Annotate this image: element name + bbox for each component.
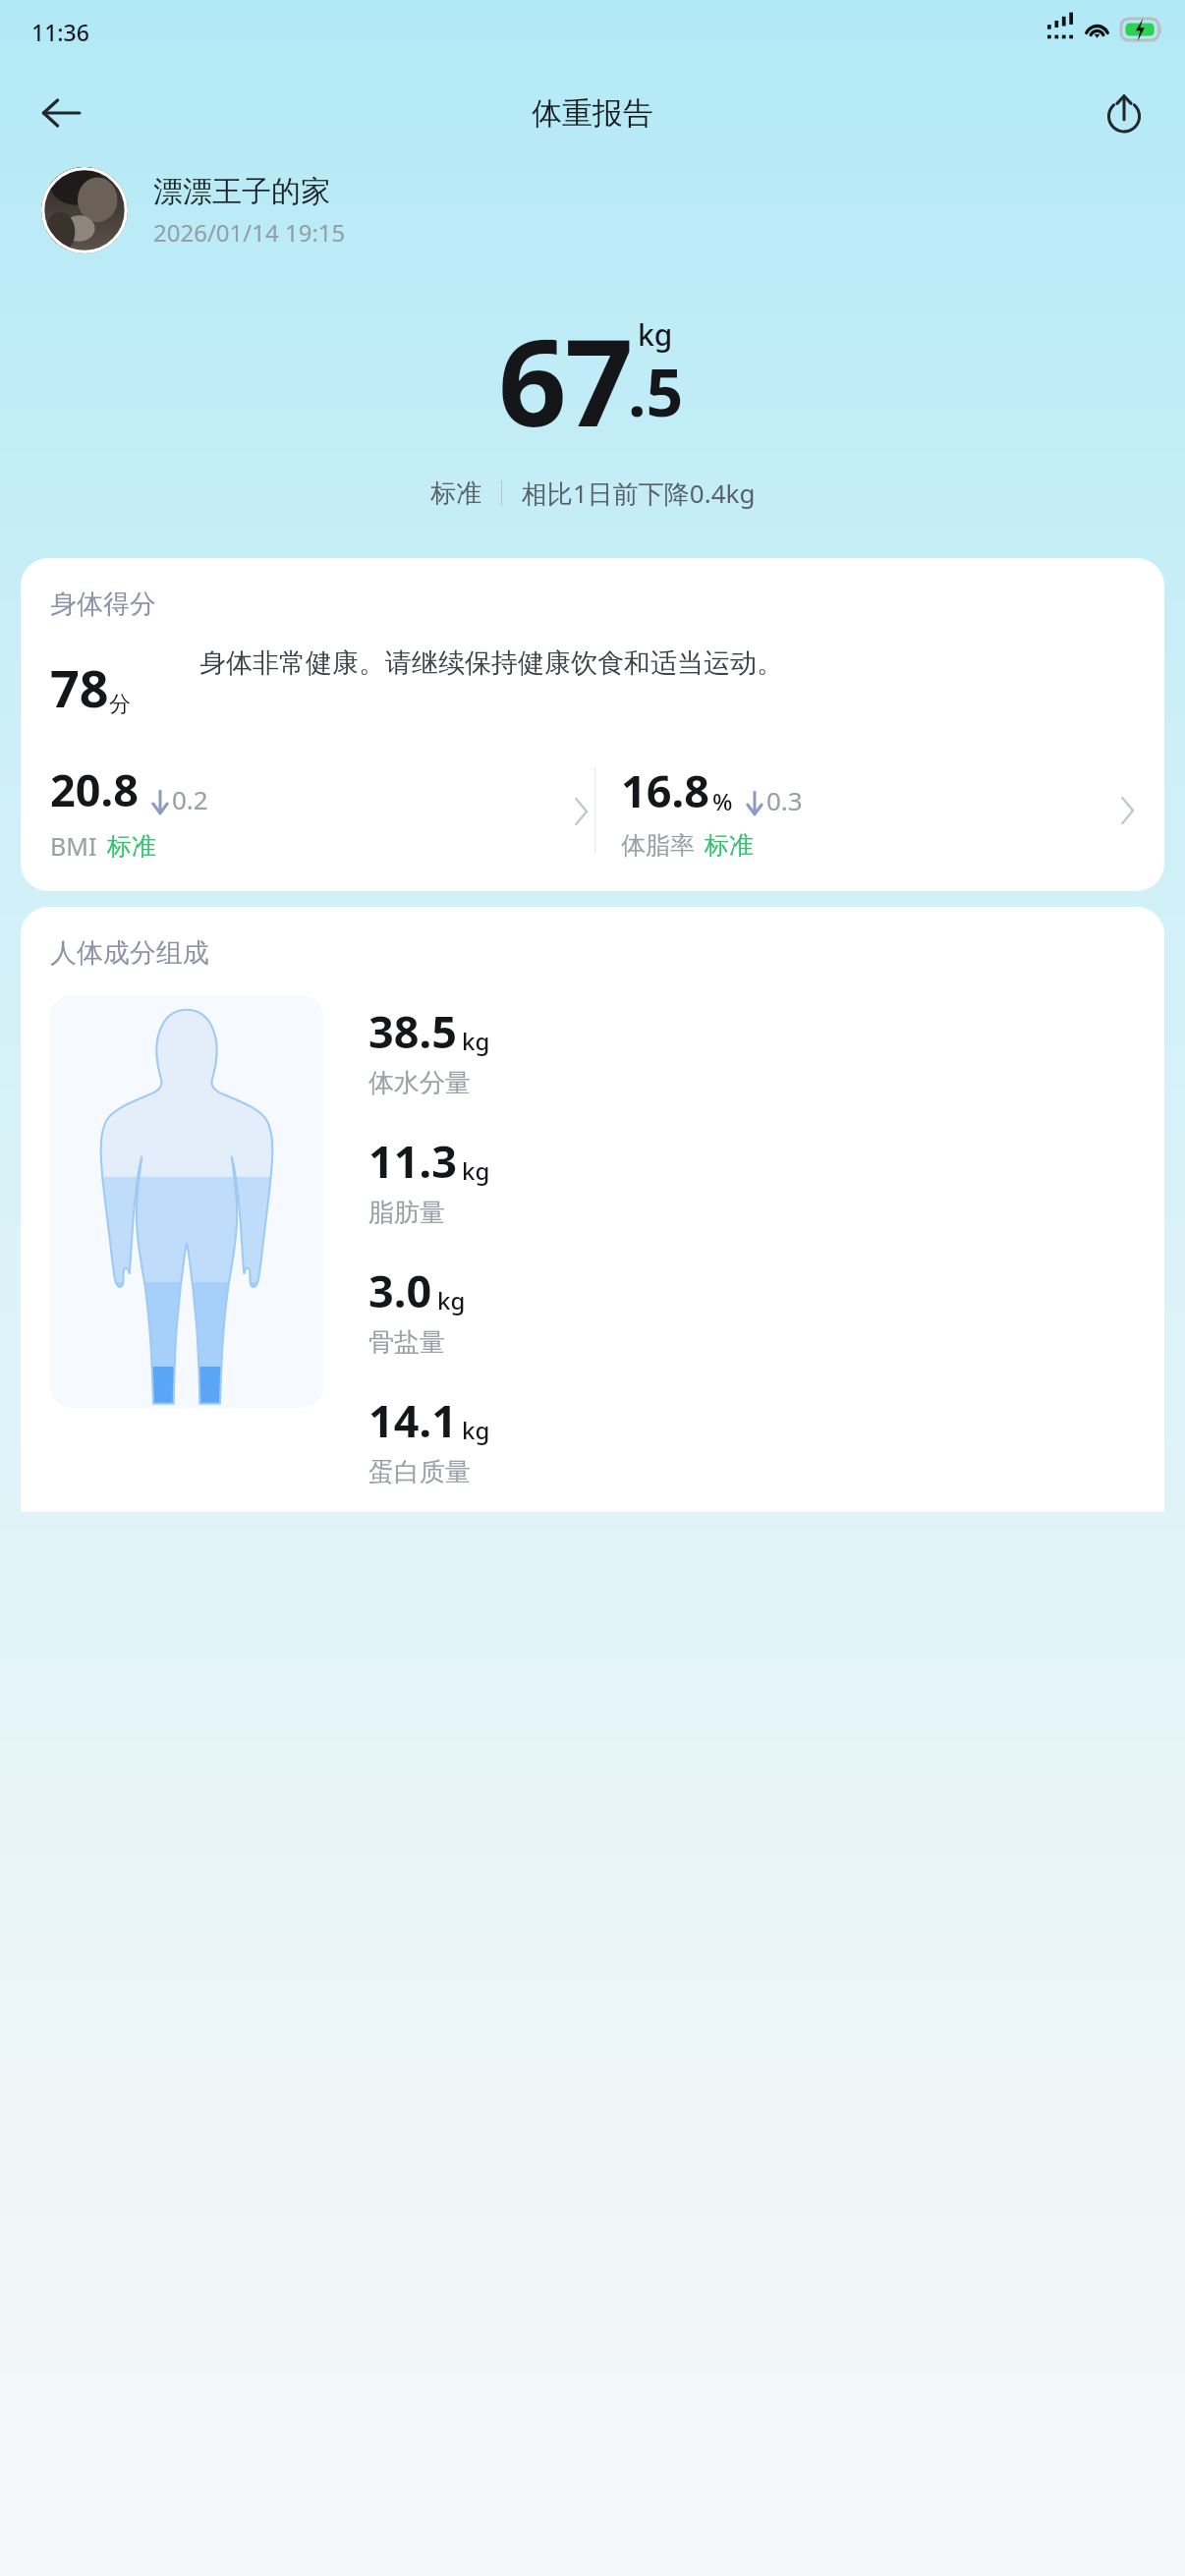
staticText: 3.0 xyxy=(368,1260,432,1320)
staticText: kg xyxy=(462,1154,490,1187)
staticText: 身体非常健康。请继续保持健康饮食和适当运动。 xyxy=(199,646,783,680)
staticText: 16.8 xyxy=(621,760,709,820)
staticText: kg xyxy=(462,1414,490,1446)
staticText: kg xyxy=(462,1025,490,1057)
staticText: 体脂率 xyxy=(621,830,695,861)
staticText: .5 xyxy=(628,347,684,435)
staticText: 20.8 xyxy=(50,759,139,819)
staticText: BMI xyxy=(50,829,97,863)
staticText: 2026/01/14 19:15 xyxy=(153,216,346,249)
staticText: 78 xyxy=(50,652,109,722)
staticText: 67 xyxy=(498,299,632,462)
staticText: kg xyxy=(638,314,673,355)
button[interactable]: 20.8 xyxy=(50,759,594,863)
button[interactable]: 漂漂王子的家 xyxy=(41,167,1144,253)
staticText: 分 xyxy=(109,691,131,718)
staticText: % xyxy=(712,785,733,817)
staticText: 11.3 xyxy=(368,1131,457,1191)
staticText: 标准 xyxy=(107,831,156,862)
staticText: kg xyxy=(437,1284,466,1316)
staticText: 38.5 xyxy=(368,1001,457,1061)
staticText: 0.3 xyxy=(766,783,803,817)
staticText: 身体得分 xyxy=(50,588,156,621)
staticText: 体水分量 xyxy=(368,1067,471,1099)
staticText: 14.1 xyxy=(368,1390,457,1450)
staticText: 0.2 xyxy=(172,782,208,816)
staticText: 蛋白质量 xyxy=(368,1456,471,1488)
button[interactable]: Back xyxy=(26,78,96,148)
staticText: 骨盐量 xyxy=(368,1326,445,1359)
staticText: 漂漂王子的家 xyxy=(153,173,330,210)
staticText: 标准 xyxy=(705,830,754,861)
staticText: 体重报告 xyxy=(532,94,653,133)
staticText: 人体成分组成 xyxy=(50,936,209,970)
staticText: 脂肪量 xyxy=(368,1197,445,1229)
staticText: 相比1日前下降0.4kg xyxy=(522,476,756,511)
staticText: 标准 xyxy=(430,477,481,510)
button[interactable]: Share xyxy=(1089,78,1159,148)
button[interactable]: 16.8 xyxy=(621,760,1141,861)
staticText: 11:36 xyxy=(31,17,89,47)
